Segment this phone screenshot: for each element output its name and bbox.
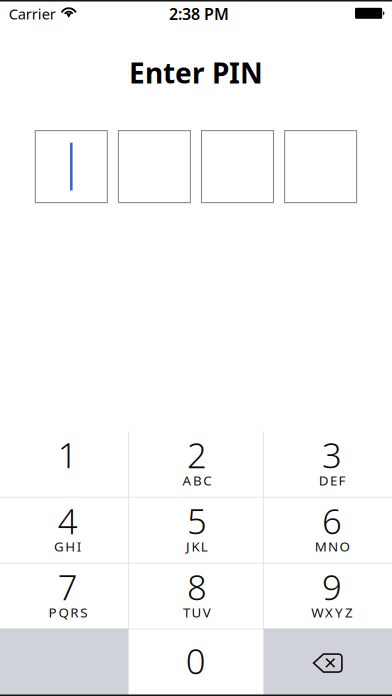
button[interactable]: 9 xyxy=(263,563,392,629)
staticText: N xyxy=(328,537,338,555)
button[interactable]: 1 xyxy=(0,431,128,497)
staticText: P xyxy=(48,603,56,621)
staticText: T xyxy=(183,603,190,621)
button[interactable]: 5 xyxy=(128,497,263,563)
staticText: 3 xyxy=(322,432,342,478)
staticText: D xyxy=(319,471,329,489)
staticText: H xyxy=(65,537,75,555)
staticText: Q xyxy=(58,603,68,621)
button[interactable]: 4 xyxy=(0,497,128,563)
staticText: C xyxy=(203,471,211,489)
staticText: Z xyxy=(345,603,353,621)
staticText: B xyxy=(193,471,202,489)
staticText: Y xyxy=(335,603,343,621)
staticText: 6 xyxy=(322,498,342,544)
staticText: J xyxy=(186,537,190,555)
button[interactable]: 8 xyxy=(128,563,263,629)
staticText: K xyxy=(191,537,199,555)
staticText: A xyxy=(182,471,191,489)
staticText: X xyxy=(325,603,333,621)
button[interactable]: 0 xyxy=(128,629,263,696)
staticText: V xyxy=(203,603,211,621)
button[interactable]: 2 xyxy=(128,431,263,497)
staticText: I xyxy=(77,537,82,555)
staticText: O xyxy=(339,537,349,555)
staticText: W xyxy=(311,603,323,621)
button[interactable]: 3 xyxy=(263,431,392,497)
button[interactable]: Delete xyxy=(263,629,392,696)
staticText: 5 xyxy=(187,498,207,544)
staticText: 0 xyxy=(186,638,206,684)
staticText: 2 xyxy=(187,432,207,478)
staticText: U xyxy=(191,603,201,621)
button[interactable]: 6 xyxy=(263,497,392,563)
staticText: 1 xyxy=(58,432,78,478)
staticText: E xyxy=(330,471,337,489)
staticText: L xyxy=(201,537,208,555)
staticText: 9 xyxy=(322,564,342,610)
staticText: 7 xyxy=(58,564,78,610)
staticText: 2:38 PM xyxy=(169,3,229,24)
staticText: F xyxy=(338,471,345,489)
staticText: R xyxy=(70,603,78,621)
staticText: S xyxy=(80,603,87,621)
staticText: Enter PIN xyxy=(129,54,263,91)
staticText: M xyxy=(315,537,327,555)
staticText: G xyxy=(54,537,64,555)
staticText: 4 xyxy=(58,498,78,544)
staticText: 8 xyxy=(187,564,207,610)
staticText: Carrier xyxy=(9,4,56,23)
button[interactable]: 7 xyxy=(0,563,128,629)
